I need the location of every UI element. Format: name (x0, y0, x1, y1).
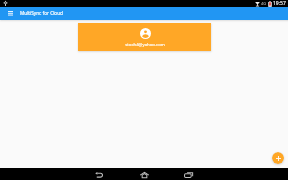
button[interactable]: Back (76, 169, 122, 180)
button[interactable]: stoch4@yahoo.com (78, 23, 211, 51)
button[interactable]: Add account (272, 152, 284, 164)
staticText: 4G (261, 1, 267, 6)
staticText: 19:57 (273, 0, 286, 7)
staticText: stoch4@yahoo.com (125, 41, 165, 47)
button[interactable]: Recent apps (165, 169, 211, 180)
button[interactable]: Home (121, 169, 167, 180)
button[interactable]: Open navigation menu (0, 7, 20, 20)
staticText: MultiSync for Cloud (20, 10, 63, 16)
